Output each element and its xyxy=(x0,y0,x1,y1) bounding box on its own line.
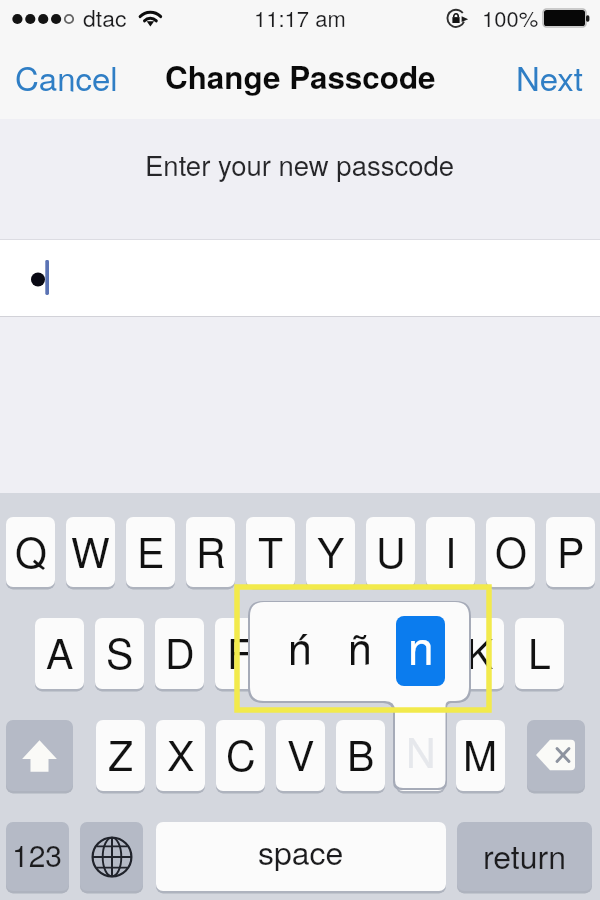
staticText: M xyxy=(463,724,498,783)
button[interactable]: ñ xyxy=(335,616,384,686)
staticText: G xyxy=(284,622,316,681)
staticText: ñ xyxy=(348,616,372,678)
staticText: E xyxy=(137,521,165,580)
button[interactable]: N xyxy=(396,720,445,791)
staticText: O xyxy=(495,521,527,580)
button[interactable]: T xyxy=(246,517,295,587)
button[interactable]: V xyxy=(276,720,325,791)
staticText: Z xyxy=(108,724,134,783)
staticText: A xyxy=(46,622,74,681)
staticText: Cancel xyxy=(15,53,118,100)
button[interactable]: A xyxy=(35,618,84,689)
button[interactable]: W xyxy=(66,517,115,587)
button[interactable]: Numbers xyxy=(6,822,69,891)
staticText: dtac xyxy=(83,1,127,34)
button[interactable]: D xyxy=(155,618,204,689)
staticText: N xyxy=(406,724,436,783)
staticText: K xyxy=(466,622,494,681)
button[interactable]: S xyxy=(95,618,144,689)
button[interactable]: F xyxy=(215,618,264,689)
button[interactable]: Next xyxy=(503,46,597,106)
staticText: F xyxy=(227,622,253,681)
button[interactable]: n xyxy=(396,616,445,686)
staticText: Enter your new passcode xyxy=(145,144,455,183)
button[interactable]: space xyxy=(156,822,446,891)
staticText: n xyxy=(408,616,434,678)
staticText: Q xyxy=(15,521,47,580)
staticText: P xyxy=(557,521,585,580)
button[interactable]: K xyxy=(455,618,504,689)
staticText: 100% xyxy=(482,2,539,34)
button[interactable]: O xyxy=(486,517,535,587)
button[interactable]: I xyxy=(426,517,475,587)
staticText: J xyxy=(409,622,430,681)
staticText: space xyxy=(258,828,344,874)
staticText: T xyxy=(258,521,284,580)
button[interactable]: Cancel xyxy=(2,46,130,106)
button[interactable]: X xyxy=(156,720,205,791)
button[interactable]: P xyxy=(546,517,595,587)
staticText: Y xyxy=(317,521,345,580)
button[interactable]: B xyxy=(336,720,385,791)
button[interactable]: Z xyxy=(96,720,145,791)
staticText: X xyxy=(167,724,195,783)
button[interactable]: Switch keyboard xyxy=(80,822,143,891)
button[interactable]: J xyxy=(395,618,444,689)
staticText: I xyxy=(445,521,457,580)
button[interactable]: Shift xyxy=(6,720,73,791)
button[interactable]: Q xyxy=(6,517,55,587)
staticText: 123 xyxy=(12,833,63,876)
staticText: Next xyxy=(516,53,584,100)
button[interactable]: M xyxy=(456,720,505,791)
button[interactable] xyxy=(0,240,600,316)
staticText: B xyxy=(347,724,375,783)
button[interactable]: R xyxy=(186,517,235,587)
staticText: V xyxy=(287,724,315,783)
staticText: H xyxy=(345,622,375,681)
staticText: Change Passcode xyxy=(165,54,436,99)
staticText: R xyxy=(196,521,226,580)
staticText: U xyxy=(376,521,406,580)
button[interactable]: Backspace xyxy=(527,720,585,791)
button[interactable]: G xyxy=(275,618,324,689)
button[interactable]: C xyxy=(216,720,265,791)
staticText: 11:17 am xyxy=(254,2,346,34)
button[interactable]: E xyxy=(126,517,175,587)
button[interactable]: Y xyxy=(306,517,355,587)
staticText: return xyxy=(483,832,566,878)
staticText: D xyxy=(165,622,195,681)
staticText: S xyxy=(106,622,134,681)
staticText: W xyxy=(71,521,110,580)
button[interactable]: H xyxy=(335,618,384,689)
staticText: L xyxy=(528,622,551,681)
button[interactable]: U xyxy=(366,517,415,587)
button[interactable]: ń xyxy=(275,616,324,686)
staticText: ń xyxy=(288,616,312,678)
button[interactable]: return xyxy=(457,822,592,891)
staticText: N xyxy=(406,721,436,780)
staticText: C xyxy=(226,724,256,783)
button[interactable]: L xyxy=(515,618,564,689)
